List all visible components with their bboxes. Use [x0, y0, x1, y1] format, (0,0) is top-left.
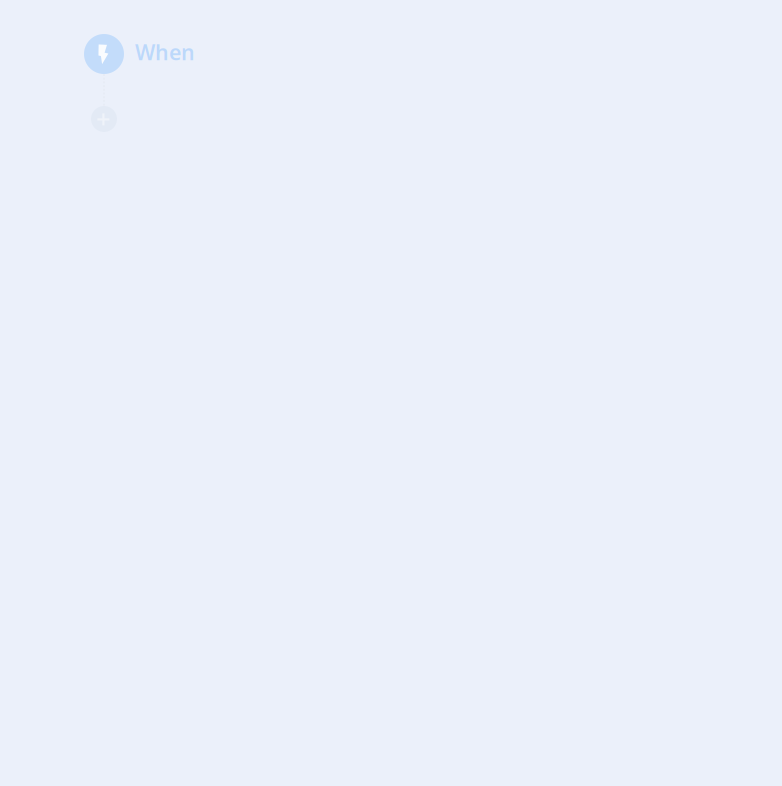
staticText: When [135, 38, 195, 66]
button[interactable]: Add action [91, 106, 117, 132]
button[interactable]: When [84, 34, 195, 74]
